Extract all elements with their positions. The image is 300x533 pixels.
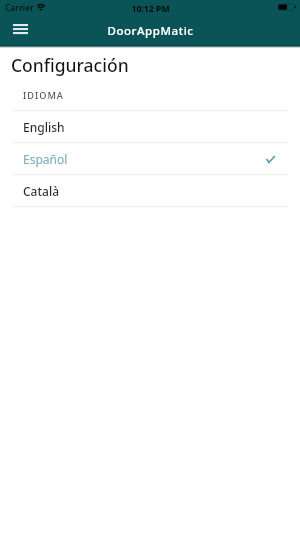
staticText: Configuración xyxy=(11,53,129,77)
button[interactable]: Open navigation menu xyxy=(4,20,37,44)
button[interactable]: Català xyxy=(0,175,300,206)
staticText: Español xyxy=(23,151,68,167)
staticText: IDIOMA xyxy=(23,89,64,102)
button[interactable]: Español xyxy=(0,143,300,174)
button[interactable]: English xyxy=(0,111,300,142)
staticText: English xyxy=(23,119,65,135)
staticText: 10:12 PM xyxy=(131,3,170,15)
staticText: Carrier xyxy=(5,2,34,14)
staticText: DoorAppMatic xyxy=(107,23,194,39)
staticText: Català xyxy=(23,183,60,199)
